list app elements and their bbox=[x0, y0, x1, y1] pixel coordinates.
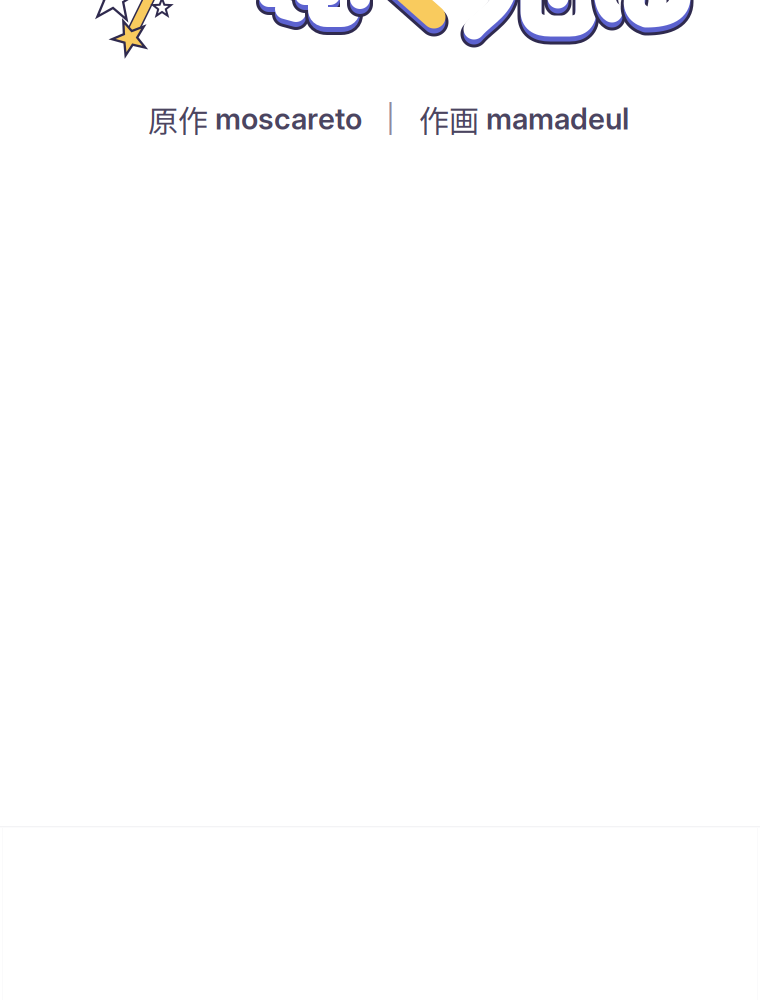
staticText: 作画 bbox=[419, 97, 486, 140]
staticText: mamadeul bbox=[486, 101, 629, 136]
staticText: 原作 bbox=[148, 97, 215, 140]
staticText: moscareto bbox=[215, 101, 362, 136]
staticText: | bbox=[362, 102, 419, 136]
